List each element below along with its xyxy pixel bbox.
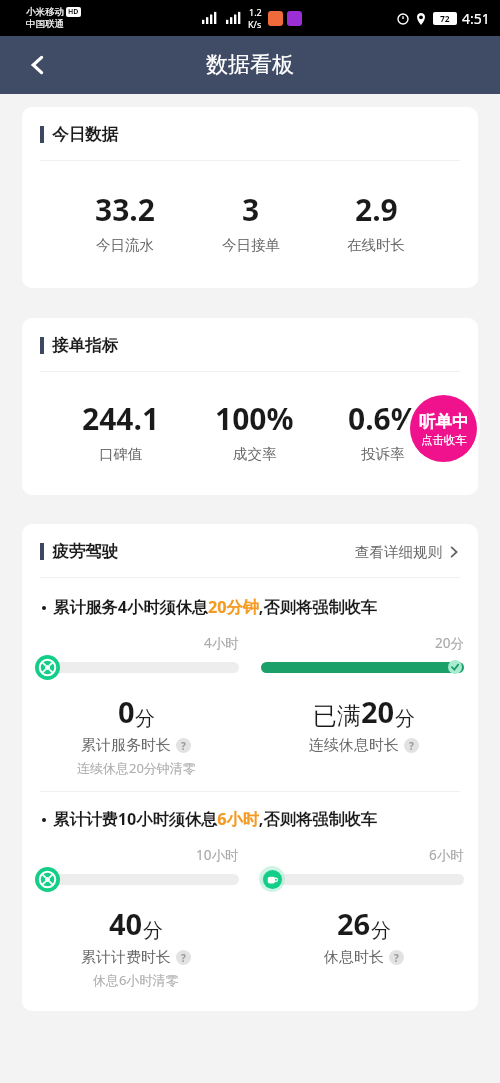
staticText: ? [181,739,186,753]
staticText: 今日接单 [222,236,280,254]
staticText: 分 [143,918,163,943]
staticText: 3 [242,189,260,230]
staticText: 分 [135,706,155,731]
staticText: 33.2 [95,189,155,230]
staticText: ? [181,951,186,965]
staticText: ? [394,951,399,965]
staticText: 26 [337,904,371,943]
button[interactable]: Help [176,738,191,753]
staticText: 成交率 [233,445,277,463]
button[interactable]: 查看详细规则 [355,543,460,561]
staticText: 20 [361,692,395,731]
staticText: 分 [371,918,391,943]
staticText: 40 [109,904,143,943]
staticText: 累计计费10小时须休息6小时,否则将强制收车 [53,808,377,830]
staticText: 6小时 [429,846,464,864]
button[interactable]: Back [16,43,60,87]
staticText: 已满 [313,701,361,731]
staticText: 连续休息20分钟清零 [77,759,196,777]
staticText: 分 [395,706,415,731]
staticText: 0.6% [348,398,418,439]
staticText: 在线时长 [347,236,405,254]
staticText: 1.2 [249,6,262,18]
button[interactable]: Help [389,950,404,965]
staticText: 投诉率 [361,445,405,463]
staticText: 接单指标 [52,335,118,356]
staticText: 100% [215,398,294,439]
staticText: ? [409,739,414,753]
staticText: 数据看板 [206,51,294,79]
staticText: 10小时 [196,846,239,864]
staticText: 累计服务4小时须休息20分钟,否则将强制收车 [53,596,377,618]
staticText: 点击收车 [421,433,467,447]
staticText: 查看详细规则 [355,543,442,561]
button[interactable]: 接单指标 [22,318,478,495]
button[interactable]: Help [176,950,191,965]
staticText: 72 [440,13,450,25]
staticText: 244.1 [82,398,160,439]
staticText: 2.9 [355,189,398,230]
staticText: 连续休息时长 [309,736,399,755]
staticText: 小米移动 [26,6,64,18]
staticText: 累计计费时长 [81,948,171,967]
staticText: 4小时 [204,634,239,652]
staticText: 听单中 [419,411,469,432]
staticText: HD [68,7,79,17]
staticText: 4:51 [462,9,490,28]
staticText: 口碑值 [99,445,143,463]
staticText: 0 [118,692,135,731]
staticText: 中国联通 [26,18,64,30]
button[interactable]: 今日数据 [22,107,478,288]
staticText: 20分 [435,634,464,652]
button[interactable]: 听单中 [410,395,477,462]
staticText: 今日流水 [96,236,154,254]
staticText: 累计服务时长 [81,736,171,755]
staticText: 休息时长 [324,948,384,967]
staticText: 休息6小时清零 [93,971,179,989]
staticText: K/s [248,18,262,30]
staticText: 今日数据 [52,124,118,145]
staticText: 疲劳驾驶 [52,541,118,562]
button[interactable]: Help [404,738,419,753]
